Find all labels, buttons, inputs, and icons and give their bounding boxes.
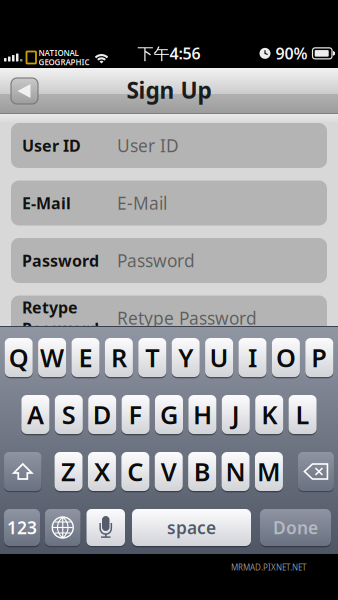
staticText: Password [22,250,99,271]
button[interactable]: L [289,395,317,434]
button[interactable]: M [255,452,283,491]
button[interactable]: B [188,452,216,491]
staticText: W [40,341,64,374]
button[interactable]: R [105,338,133,377]
button[interactable]: O [272,338,300,377]
button[interactable]: Dictation [86,509,125,546]
staticText: B [194,455,211,488]
button[interactable]: Retype Password [11,295,327,340]
staticText: Y [178,341,193,374]
button[interactable]: I [238,338,266,377]
button[interactable]: V [155,452,183,491]
staticText: 123 [7,516,37,539]
button[interactable]: N [222,452,250,491]
staticText: D [93,398,112,431]
button[interactable]: A [21,395,49,434]
staticText: I [248,341,257,374]
staticText: 90% [275,43,307,64]
staticText: Password [117,249,195,272]
staticText: J [232,398,240,431]
staticText: User ID [22,135,81,156]
staticText: A [27,398,44,431]
button[interactable]: Password [11,238,327,283]
staticText: U [210,341,229,374]
staticText: V [161,455,177,488]
staticText: Done [273,516,318,539]
staticText: GEOGRAPHIC [38,57,89,67]
button[interactable]: Q [5,338,33,377]
staticText: E [78,341,92,374]
button[interactable]: U [205,338,233,377]
staticText: Retype Password [22,297,99,339]
staticText: User ID [117,134,179,157]
button[interactable]: J [222,395,250,434]
button[interactable]: D [88,395,116,434]
button[interactable]: User ID [11,123,327,168]
button[interactable]: F [122,395,150,434]
staticText: T [145,341,159,374]
staticText: H [193,398,212,431]
button[interactable]: Next keyboard [45,509,80,546]
button[interactable]: Delete [298,452,334,491]
staticText: space [167,516,216,539]
button[interactable]: K [255,395,283,434]
staticText: Z [61,455,76,488]
button[interactable]: space [132,509,251,546]
button[interactable]: Done [260,509,331,546]
staticText: NATIONAL [38,48,78,58]
button[interactable]: H [188,395,216,434]
button[interactable]: E-Mail [11,180,327,225]
button[interactable]: Back [11,78,38,104]
staticText: R [111,341,127,374]
staticText: C [127,455,143,488]
staticText: O [276,341,296,374]
staticText: Retype Password [117,306,257,329]
staticText: N [226,455,246,488]
staticText: 下午4:56 [137,43,200,64]
button[interactable]: Z [55,452,83,491]
button[interactable]: G [155,395,183,434]
staticText: E-Mail [22,192,71,214]
staticText: P [311,341,327,374]
button[interactable]: Y [172,338,200,377]
staticText: Q [9,341,29,374]
button[interactable]: Shift [4,452,42,491]
staticText: X [94,455,110,488]
button[interactable]: X [88,452,116,491]
staticText: G [160,398,178,431]
button[interactable]: P [305,338,333,377]
button[interactable]: E [71,338,99,377]
staticText: F [129,398,143,431]
button[interactable]: S [55,395,83,434]
button[interactable]: W [38,338,66,377]
button[interactable]: 123 [4,509,40,546]
staticText: Sign Up [126,75,211,105]
staticText: M [257,455,281,488]
staticText: K [261,398,277,431]
button[interactable]: T [138,338,166,377]
staticText: MRMAD.PIXNET.NET [231,562,306,573]
staticText: E-Mail [117,191,167,214]
button[interactable]: C [121,452,149,491]
staticText: S [62,398,76,431]
staticText: L [296,398,310,431]
